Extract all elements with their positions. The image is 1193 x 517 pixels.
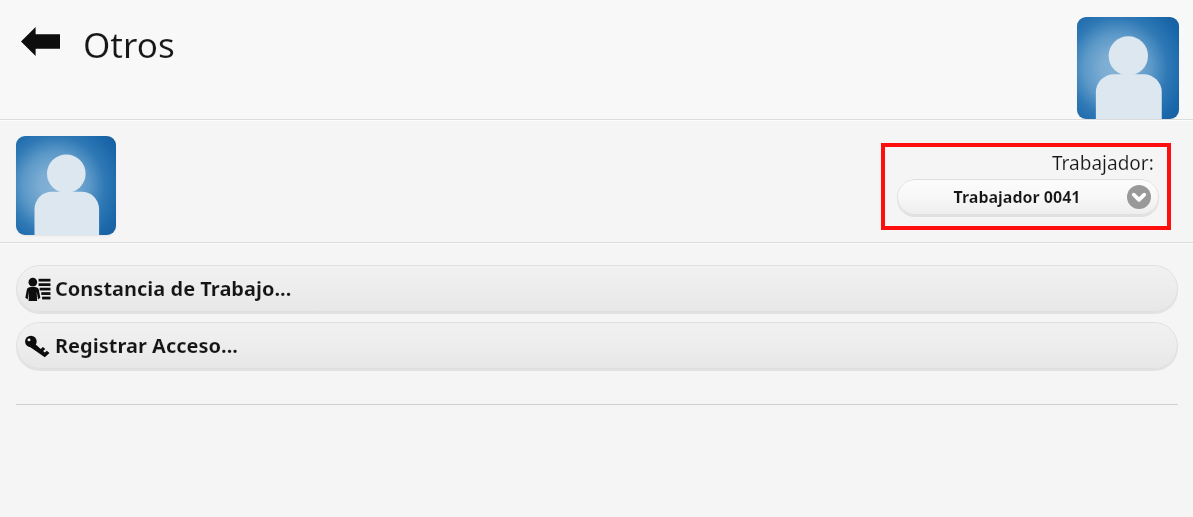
staticText: Otros [83, 21, 175, 69]
button[interactable]: Open dropdown [1127, 185, 1151, 209]
staticText: Trabajador: [1052, 150, 1154, 176]
button[interactable]: Registrar Acceso... [16, 322, 1178, 369]
staticText: Trabajador 0041 [897, 186, 1137, 208]
button[interactable]: Constancia de Trabajo... [16, 265, 1178, 312]
button[interactable]: Back [12, 13, 68, 69]
button[interactable]: Trabajador 0041 [897, 179, 1159, 215]
staticText: Registrar Acceso... [55, 332, 238, 359]
button[interactable]: Worker photo [16, 136, 116, 235]
staticText: Constancia de Trabajo... [55, 275, 292, 302]
button[interactable]: Profile photo [1077, 17, 1179, 119]
